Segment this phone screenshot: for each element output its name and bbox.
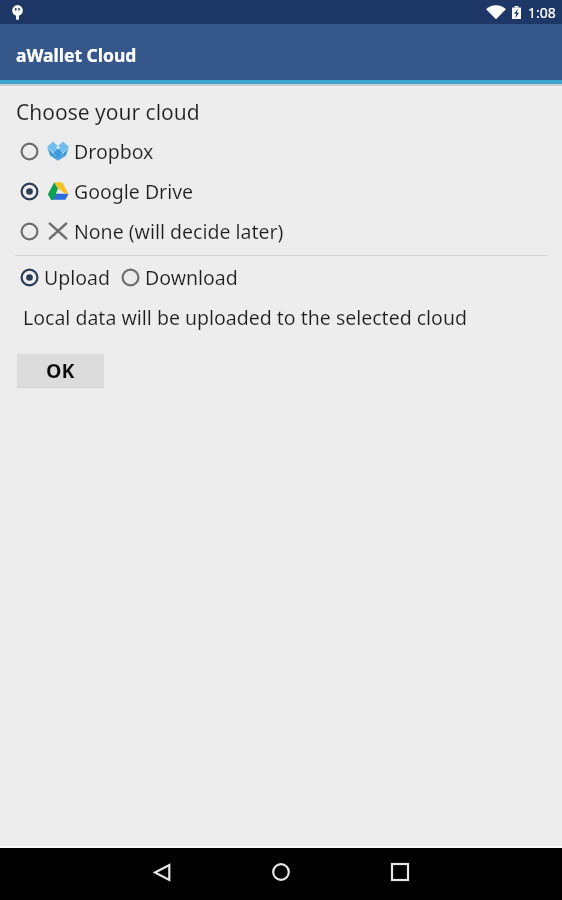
staticText: Download [145, 264, 238, 291]
button[interactable]: Download [121, 260, 242, 295]
staticText: OK [46, 357, 75, 384]
staticText: Google Drive [74, 178, 194, 205]
staticText: Local data will be uploaded to the selec… [23, 304, 467, 331]
button[interactable]: Google Drive [0, 171, 562, 211]
staticText: Dropbox [74, 138, 154, 165]
button[interactable]: Home [257, 848, 305, 896]
staticText: 1:08 [528, 3, 556, 22]
button[interactable]: Recent apps [376, 848, 424, 896]
button[interactable]: OK [17, 353, 104, 388]
staticText: Upload [44, 264, 111, 291]
staticText: aWallet Cloud [16, 43, 137, 67]
button[interactable]: None (will decide later) [0, 211, 562, 251]
staticText: Choose your cloud [16, 98, 200, 127]
staticText: None (will decide later) [74, 218, 284, 245]
button[interactable]: Back [138, 848, 186, 896]
button[interactable]: Upload [0, 260, 115, 295]
button[interactable]: Dropbox [0, 131, 562, 171]
